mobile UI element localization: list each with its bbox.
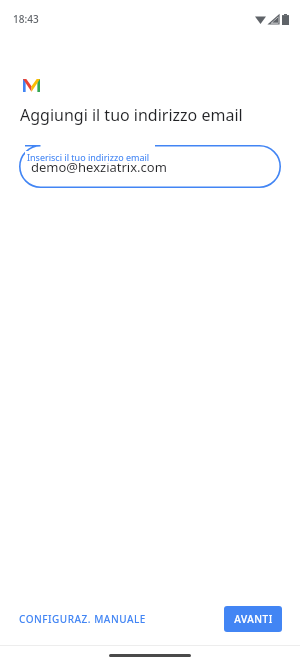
staticText: Aggiungi il tuo indirizzo email: [20, 104, 243, 126]
button[interactable]: AVANTI: [224, 606, 282, 632]
staticText: Inserisci il tuo indirizzo email: [27, 151, 150, 163]
staticText: demo@hexziatrix.com: [31, 158, 167, 176]
staticText: 18:43: [13, 12, 39, 26]
button[interactable]: demo@hexziatrix.com: [19, 145, 281, 188]
staticText: CONFIGURAZ. MANUALE: [19, 612, 146, 626]
button[interactable]: CONFIGURAZ. MANUALE: [11, 606, 154, 632]
other: Gmail: [23, 79, 40, 92]
staticText: AVANTI: [234, 612, 273, 626]
